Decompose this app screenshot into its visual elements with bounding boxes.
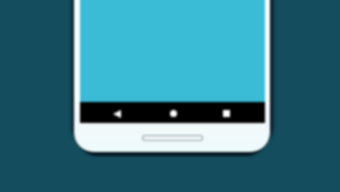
button[interactable]: Recents (205, 103, 247, 124)
button[interactable]: Home (152, 103, 194, 124)
button[interactable]: Back (96, 103, 138, 124)
